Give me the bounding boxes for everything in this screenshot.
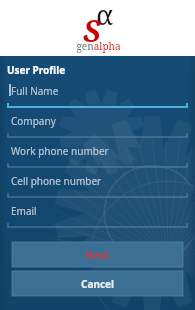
staticText: Company: [11, 114, 56, 128]
button[interactable]: Company: [0, 111, 195, 141]
button[interactable]: Cell phone number: [0, 171, 195, 201]
button[interactable]: Cancel: [12, 271, 183, 296]
staticText: Cancel: [81, 277, 115, 291]
staticText: Full Name: [11, 84, 59, 98]
staticText: Next: [85, 248, 110, 262]
staticText: genalpha: [76, 39, 121, 53]
staticText: α: [96, 0, 114, 33]
staticText: Cell phone number: [11, 174, 102, 188]
button[interactable]: Full Name: [0, 81, 195, 111]
button[interactable]: Email: [0, 201, 195, 231]
button[interactable]: Work phone number: [0, 141, 195, 171]
staticText: Work phone number: [11, 144, 109, 158]
staticText: Email: [11, 204, 37, 218]
staticText: S: [83, 10, 101, 51]
button[interactable]: Next: [12, 242, 183, 267]
staticText: User Profile: [7, 63, 66, 77]
